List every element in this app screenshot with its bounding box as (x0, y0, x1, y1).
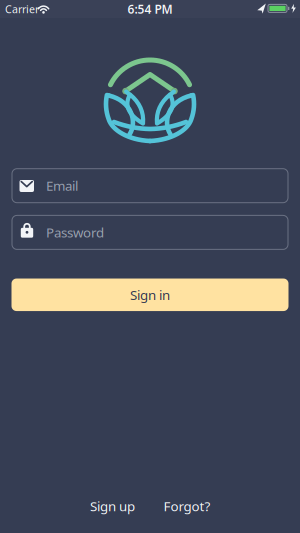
staticText: Sign in (130, 286, 170, 304)
button[interactable]: Password (12, 215, 288, 249)
button[interactable]: Sign in (11, 279, 288, 311)
staticText: Email (46, 177, 78, 194)
button[interactable]: Sign up (77, 494, 147, 518)
button[interactable]: Forgot? (152, 494, 222, 518)
staticText: Sign up (90, 497, 135, 515)
staticText: 6:54 PM (127, 1, 172, 17)
button[interactable]: Email (12, 169, 288, 203)
staticText: Password (46, 223, 104, 241)
staticText: Carrier (5, 2, 39, 16)
staticText: Forgot? (163, 497, 210, 515)
